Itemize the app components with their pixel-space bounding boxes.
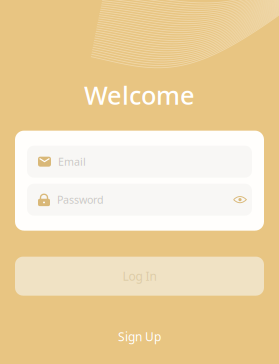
staticText: Sign Up — [118, 329, 161, 344]
button[interactable]: Sign Up — [118, 329, 161, 344]
staticText: Welcome — [84, 78, 195, 112]
staticText: Email — [58, 155, 86, 169]
button[interactable]: Log In — [15, 257, 264, 296]
staticText: Log In — [122, 268, 156, 284]
staticText: Password — [57, 193, 104, 207]
